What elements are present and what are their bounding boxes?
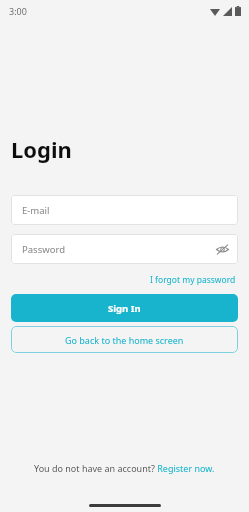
button[interactable]: Sign In (11, 294, 238, 322)
staticText: Login (11, 134, 72, 164)
button[interactable]: Password (11, 234, 238, 264)
button[interactable]: E-mail (11, 195, 238, 225)
staticText: Password (22, 243, 65, 256)
button[interactable]: You do not have an account? Register now… (30, 460, 219, 476)
button[interactable]: Go back to the home screen (11, 326, 238, 353)
staticText: E-mail (22, 204, 50, 217)
button[interactable]: I forgot my password (148, 272, 238, 288)
staticText: 3:00 (9, 5, 27, 17)
staticText: Sign In (108, 302, 141, 315)
staticText: Go back to the home screen (65, 334, 184, 346)
button[interactable]: Show password (213, 240, 231, 258)
